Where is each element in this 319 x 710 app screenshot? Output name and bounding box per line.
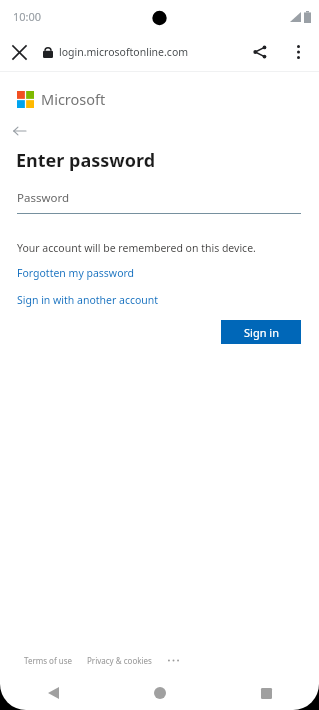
button[interactable]: Back	[13, 122, 37, 140]
staticText: Sign in with another account	[17, 293, 159, 307]
staticText: Microsoft	[41, 89, 106, 109]
staticText: Forgotten my password	[17, 266, 135, 280]
button[interactable]: Forgotten my password	[17, 266, 135, 280]
button[interactable]: Recent apps	[213, 676, 319, 710]
button[interactable]: Share	[241, 33, 279, 71]
button[interactable]: Sign in	[221, 320, 301, 344]
button[interactable]: Sign in with another account	[17, 293, 159, 307]
staticText: 10:00	[13, 9, 42, 24]
button[interactable]: Back	[0, 676, 107, 710]
staticText: Privacy & cookies	[87, 655, 152, 666]
staticText: Sign in	[244, 325, 279, 340]
button[interactable]: Terms of use	[24, 655, 73, 666]
button[interactable]: Password	[17, 190, 301, 214]
button[interactable]: Privacy & cookies	[87, 655, 152, 666]
button[interactable]: Close	[0, 33, 38, 71]
button[interactable]: Home	[107, 676, 213, 710]
staticText: Enter password	[16, 148, 156, 173]
staticText: Your account will be remembered on this …	[17, 241, 256, 255]
button[interactable]: More	[165, 654, 181, 666]
staticText: Terms of use	[24, 655, 73, 666]
staticText: Password	[17, 190, 70, 206]
button[interactable]: More options	[279, 33, 317, 71]
staticText: login.microsoftonline.com	[59, 45, 241, 59]
